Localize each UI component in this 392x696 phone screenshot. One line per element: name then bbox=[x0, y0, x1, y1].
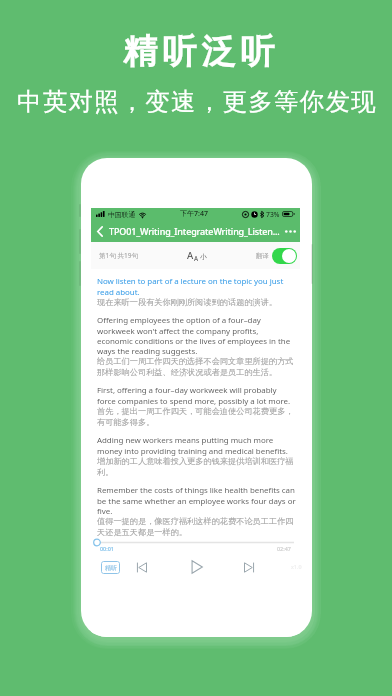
staticText: TPO01_Writing_IntegrateWriting_Listen... bbox=[109, 225, 281, 237]
staticText: 下午7:47 bbox=[180, 209, 208, 219]
button[interactable]: More options bbox=[281, 220, 300, 242]
staticText: 现在来听一段有关你刚刚所阅读到的话题的演讲。 bbox=[97, 297, 296, 307]
staticText: 00:01 bbox=[100, 545, 114, 552]
button[interactable]: Offering employees the option of a four–… bbox=[97, 315, 296, 357]
staticText: 增加新的工人意味着投入更多的钱来提供培训和医疗福利。 bbox=[97, 456, 296, 477]
staticText: 第1句 共19句 bbox=[99, 251, 138, 260]
staticText: 翻译 bbox=[256, 252, 269, 260]
button[interactable]: First, offering a four–day workweek will… bbox=[97, 385, 296, 407]
staticText: x1.0 bbox=[291, 563, 302, 570]
button[interactable]: Previous bbox=[131, 557, 151, 577]
button[interactable]: Back bbox=[91, 220, 109, 242]
staticText: 小 bbox=[200, 252, 207, 261]
button[interactable]: Now listen to part of a lecture on the t… bbox=[97, 276, 296, 298]
button[interactable]: Adding new workers means putting much mo… bbox=[97, 435, 296, 457]
staticText: A bbox=[187, 249, 194, 262]
button[interactable]: Play bbox=[185, 556, 207, 578]
button[interactable]: Translation toggle bbox=[272, 248, 297, 264]
staticText: 首先，提出一周工作四天，可能会迫使公司花费更多，有可能多得多。 bbox=[97, 406, 296, 427]
staticText: 中国联通 bbox=[108, 210, 136, 219]
button[interactable]: 精听 bbox=[101, 561, 120, 574]
button[interactable]: Remember the costs of things like health… bbox=[97, 485, 296, 517]
staticText: A bbox=[194, 254, 199, 262]
button[interactable]: A bbox=[185, 246, 209, 265]
button[interactable]: Playback speed bbox=[288, 560, 305, 573]
button[interactable]: Next bbox=[239, 557, 259, 577]
staticText: 02:47 bbox=[277, 545, 291, 552]
staticText: 精听 bbox=[105, 564, 117, 572]
staticText: 中英对照，变速，更多等你发现 bbox=[17, 86, 377, 117]
staticText: 73% bbox=[266, 210, 280, 219]
staticText: 值得一提的是，像医疗福利这样的花费不论员工工作四天还是五天都是一样的。 bbox=[97, 516, 296, 537]
staticText: 给员工们一周工作四天的选择不会同文章里所提的方式那样影响公司利益、经济状况或者是… bbox=[97, 356, 296, 377]
staticText: 精听泛听 bbox=[121, 30, 277, 73]
